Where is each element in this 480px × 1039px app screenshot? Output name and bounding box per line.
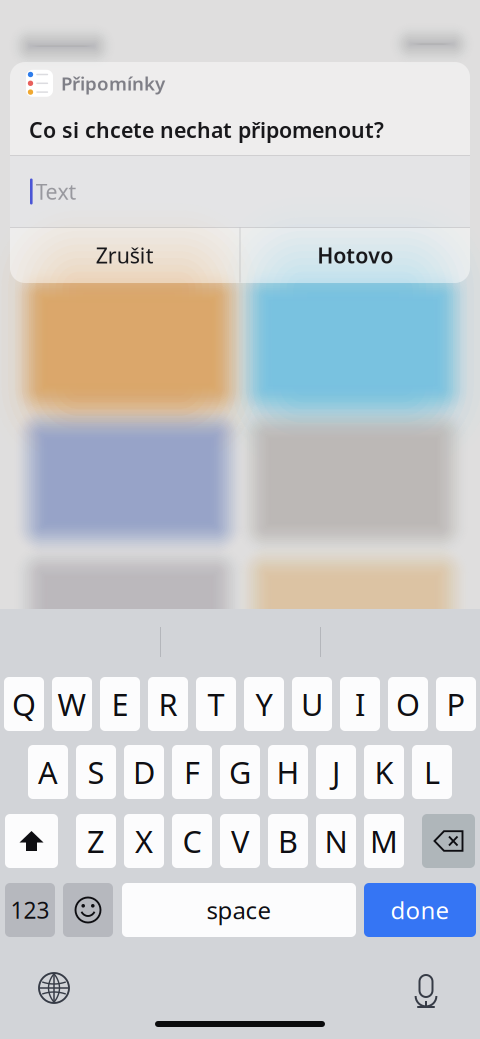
staticText: 123 [10,895,49,925]
staticText: Zrušit [96,241,154,269]
button[interactable]: Hotovo [240,228,470,283]
staticText: G [229,752,251,792]
button[interactable]: V [220,814,260,868]
button[interactable]: F [172,745,212,799]
button[interactable]: O [388,677,428,731]
button[interactable]: C [172,814,212,868]
button[interactable]: P [436,677,476,731]
staticText: Co si chcete nechat připomenout? [29,116,384,144]
button[interactable]: done [364,883,476,937]
button[interactable]: H [268,745,308,799]
staticText: Y [255,684,272,724]
button[interactable]: T [196,677,236,731]
button[interactable]: J [316,745,356,799]
button[interactable]: L [412,745,452,799]
staticText: O [396,684,420,724]
staticText: M [370,821,398,861]
button[interactable]: space [122,883,356,937]
staticText: T [207,684,224,724]
button[interactable]: Q [4,677,44,731]
staticText: N [324,821,347,861]
staticText: B [278,821,298,861]
button[interactable]: 123 [5,883,55,937]
staticText: Z [87,821,105,861]
staticText: C [182,821,201,861]
button[interactable]: D [124,745,164,799]
staticText: S [87,752,104,792]
staticText: K [374,752,393,792]
button[interactable]: Z [76,814,116,868]
button[interactable]: I [340,677,380,731]
button[interactable]: Dictation [411,968,441,1004]
button[interactable]: Shift [5,814,58,868]
staticText: H [276,752,299,792]
staticText: space [206,894,271,926]
button[interactable]: Y [244,677,284,731]
staticText: L [424,752,440,792]
button[interactable]: X [124,814,164,868]
staticText: Text [36,177,77,206]
button[interactable]: Delete [422,814,475,868]
button[interactable]: M [364,814,404,868]
button[interactable]: G [220,745,260,799]
button[interactable]: U [292,677,332,731]
staticText: W [57,684,86,724]
staticText: V [231,821,249,861]
staticText: U [301,684,323,724]
button[interactable]: A [28,745,68,799]
staticText: X [135,821,153,861]
staticText: F [184,752,200,792]
staticText: J [332,752,340,792]
button[interactable]: N [316,814,356,868]
staticText: done [390,894,449,926]
button[interactable]: Next keyboard [37,971,71,1005]
staticText: R [158,684,177,724]
staticText: D [133,752,155,792]
staticText: E [111,684,128,724]
staticText: Q [12,684,36,724]
button[interactable]: B [268,814,308,868]
button[interactable]: W [52,677,92,731]
staticText: Hotovo [317,241,393,269]
staticText: P [446,684,465,724]
staticText: Připomínky [61,71,165,96]
staticText: A [38,752,58,792]
button[interactable]: E [100,677,140,731]
button[interactable]: Emoji [63,883,113,937]
staticText: I [355,684,365,724]
button[interactable]: R [148,677,188,731]
button[interactable]: S [76,745,116,799]
button[interactable]: Zrušit [10,228,240,283]
button[interactable]: K [364,745,404,799]
